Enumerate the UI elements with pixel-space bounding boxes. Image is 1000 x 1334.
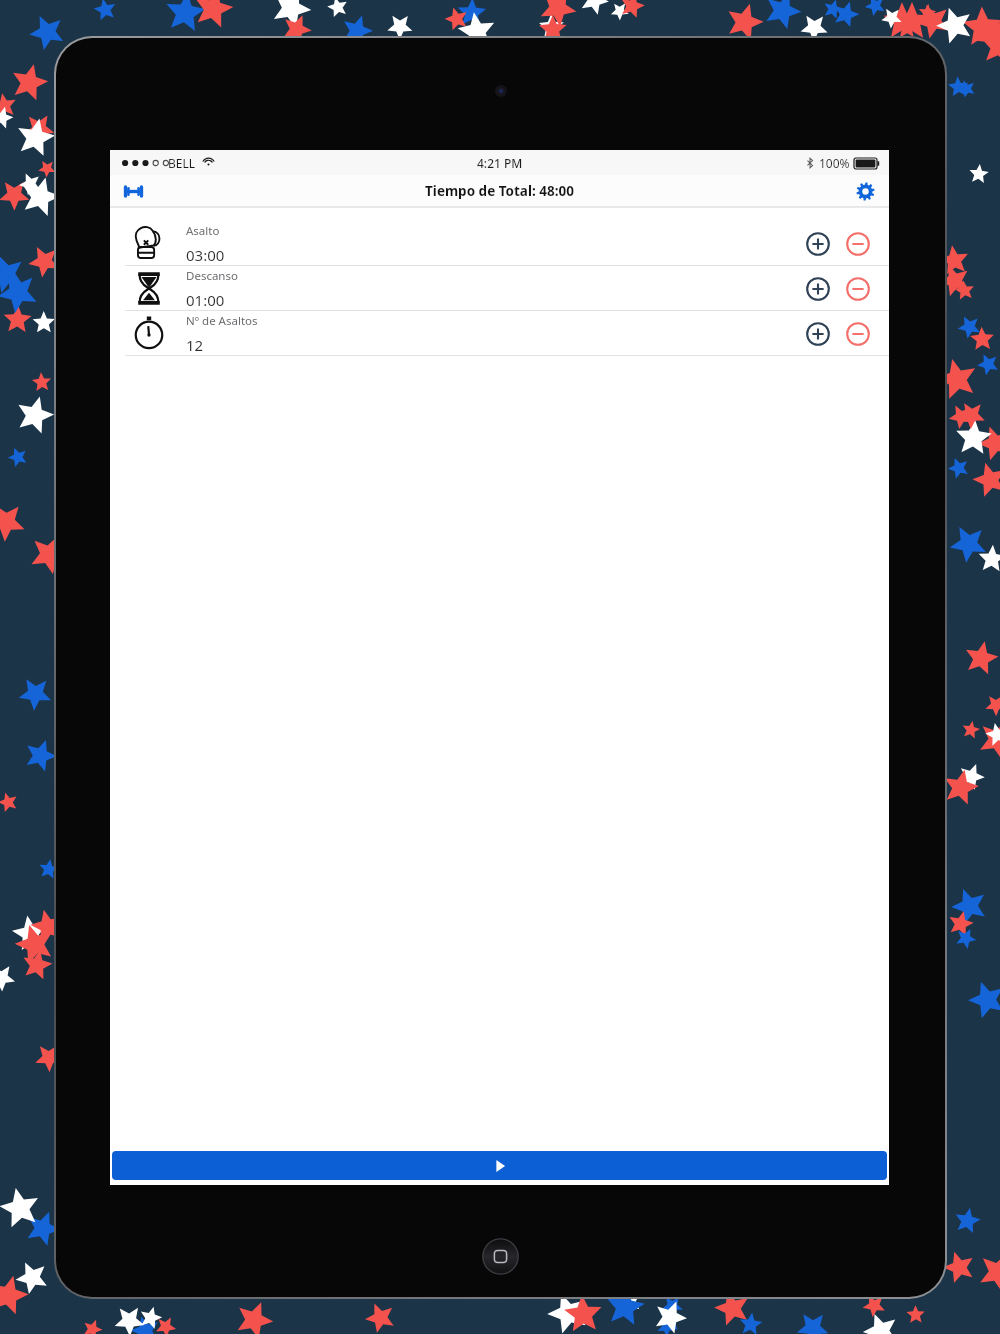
button[interactable]: Home	[482, 1238, 519, 1275]
staticText: Nº de Asaltos	[186, 313, 258, 329]
button[interactable]: Decrease Asalto	[841, 227, 875, 261]
staticText: Asalto	[186, 223, 220, 239]
staticText: 4:21 PM	[477, 155, 523, 171]
staticText: 12	[186, 335, 204, 355]
button[interactable]: Asalto	[110, 222, 889, 266]
staticText: BELL	[168, 155, 196, 171]
button[interactable]: Workouts	[116, 175, 150, 207]
button[interactable]: Increase Descanso	[801, 272, 835, 306]
button[interactable]: Descanso	[110, 266, 889, 311]
button[interactable]: Increase Nº de Asaltos	[801, 317, 835, 351]
button[interactable]: Decrease Nº de Asaltos	[841, 317, 875, 351]
staticText: 01:00	[186, 290, 225, 310]
button[interactable]: Nº de Asaltos	[110, 311, 889, 356]
staticText: Descanso	[186, 268, 238, 284]
button[interactable]: Increase Asalto	[801, 227, 835, 261]
button[interactable]: Decrease Descanso	[841, 272, 875, 306]
staticText: Tiempo de Total: 48:00	[425, 182, 574, 200]
button[interactable]: Start	[112, 1151, 887, 1180]
staticText: 100%	[819, 155, 850, 171]
button[interactable]: Settings	[848, 175, 882, 207]
staticText: 03:00	[186, 245, 225, 265]
